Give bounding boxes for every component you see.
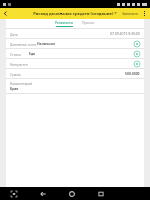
button[interactable]: Записать: [120, 8, 140, 19]
staticText: 500.0000: [125, 71, 140, 76]
other: Select Статья: [134, 51, 140, 57]
button[interactable]: Реквизиты: [54, 20, 75, 27]
other: Select Контрагент: [134, 61, 140, 67]
staticText: Сумма: [10, 72, 21, 76]
button[interactable]: Back: [28, 187, 57, 200]
staticText: Статья: [10, 52, 21, 56]
button[interactable]: Дата: [6, 28, 144, 38]
staticText: Комментарий: [10, 81, 33, 85]
staticText: Реквизиты: [55, 20, 74, 25]
button[interactable]: Статья: [6, 48, 144, 58]
staticText: Денежные счета: [10, 42, 37, 46]
button[interactable]: Денежные счета: [6, 38, 144, 48]
button[interactable]: Прочее: [80, 20, 96, 27]
staticText: Расход денежных средств (создание) *: [33, 11, 117, 17]
staticText: Еда: [29, 51, 36, 56]
other: Select Денежные счета: [134, 41, 140, 47]
button[interactable]: Сумма: [6, 68, 144, 78]
button[interactable]: Screenshot: [0, 187, 28, 200]
button[interactable]: More options: [140, 9, 149, 18]
staticText: 07.09.2015 9:30:00: [110, 31, 140, 36]
staticText: Записать: [122, 11, 138, 16]
staticText: Контрагент: [10, 62, 29, 66]
button[interactable]: Back: [0, 8, 11, 19]
button[interactable]: Recent apps: [86, 187, 115, 200]
button[interactable]: Home: [57, 187, 86, 200]
button[interactable]: Комментарий: [6, 78, 144, 94]
staticText: Наличные: [37, 41, 56, 46]
staticText: Дата: [10, 32, 18, 36]
button[interactable]: Контрагент: [6, 58, 144, 68]
staticText: Прочее: [82, 20, 95, 25]
staticText: Брак: [10, 86, 19, 91]
